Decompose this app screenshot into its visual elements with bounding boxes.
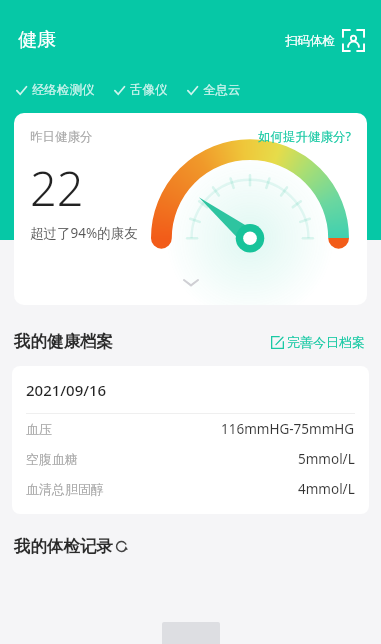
- button[interactable]: 舌像仪: [112, 80, 170, 100]
- button[interactable]: 全息云: [185, 80, 243, 100]
- staticText: 4mmol/L: [298, 480, 355, 498]
- staticText: 2021/09/16: [26, 380, 107, 400]
- button[interactable]: 2021/09/16: [12, 366, 369, 514]
- staticText: 全息云: [203, 82, 241, 98]
- staticText: 我的体检记录: [14, 536, 113, 557]
- button[interactable]: 如何提升健康分?: [256, 126, 353, 147]
- staticText: 超过了94%的康友: [30, 224, 138, 242]
- staticText: 22: [30, 156, 84, 220]
- staticText: 经络检测仪: [32, 82, 95, 98]
- staticText: 昨日健康分: [30, 129, 93, 145]
- staticText: 扫码体检: [285, 33, 335, 49]
- button[interactable]: 我的体检记录: [14, 536, 381, 557]
- staticText: 116mmHG-75mmHG: [221, 420, 355, 438]
- staticText: 血压: [26, 421, 52, 437]
- button[interactable]: Expand: [176, 267, 206, 297]
- button[interactable]: 扫码体检: [283, 27, 367, 54]
- staticText: 如何提升健康分?: [258, 128, 351, 145]
- staticText: 5mmol/L: [298, 450, 355, 468]
- button[interactable]: 经络检测仪: [14, 80, 97, 100]
- other: 扫码体检: [342, 29, 365, 52]
- staticText: 完善今日档案: [287, 334, 365, 350]
- staticText: 舌像仪: [130, 82, 168, 98]
- button[interactable]: 完善今日档案: [269, 332, 367, 352]
- button[interactable]: 昨日健康分: [14, 113, 367, 305]
- staticText: 空腹血糖: [26, 451, 78, 467]
- staticText: 健康: [18, 28, 56, 52]
- staticText: 血清总胆固醇: [26, 481, 104, 497]
- staticText: 我的健康档案: [14, 331, 113, 352]
